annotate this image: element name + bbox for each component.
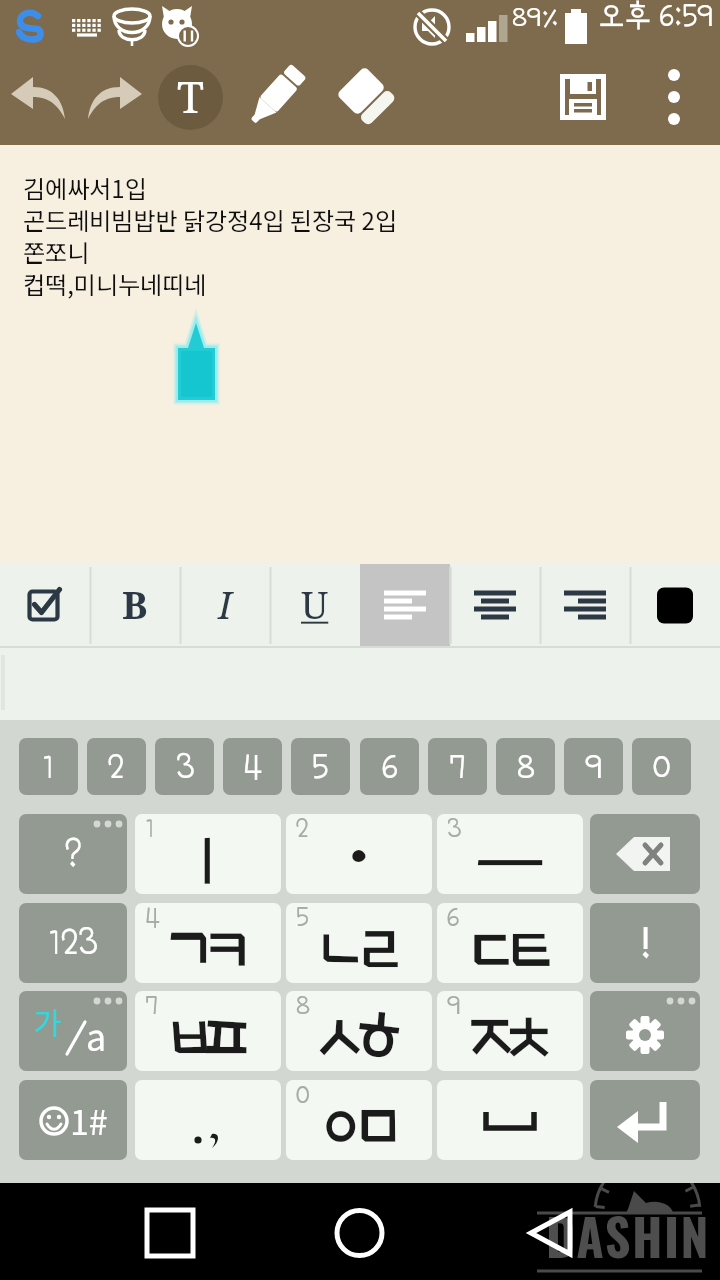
staticText: I: [218, 578, 232, 630]
staticText: ㄴ: [302, 903, 378, 983]
button[interactable]: [450, 564, 540, 647]
button[interactable]: 5: [291, 738, 350, 795]
staticText: 5: [296, 904, 309, 932]
button[interactable]: ㅈㅊ: [437, 991, 583, 1071]
staticText: ㅍ: [189, 991, 265, 1071]
button[interactable]: space: [437, 1080, 583, 1160]
button[interactable]: Undo: [8, 62, 70, 130]
button[interactable]: 1: [19, 738, 78, 795]
staticText: ㅋ: [189, 903, 265, 983]
button[interactable]: ga: [19, 991, 127, 1071]
button[interactable]: [630, 564, 720, 647]
button[interactable]: 7: [428, 738, 487, 795]
staticText: ·: [321, 814, 397, 894]
staticText: 1: [145, 815, 155, 843]
staticText: 9: [585, 749, 602, 785]
button[interactable]: 3: [155, 738, 214, 795]
staticText: ?: [64, 835, 82, 873]
button[interactable]: 123: [19, 903, 127, 983]
button[interactable]: 0: [632, 738, 691, 795]
staticText: ㅎ: [340, 991, 416, 1071]
staticText: ㅈ: [453, 991, 529, 1071]
button[interactable]: ㅂㅍ: [135, 991, 281, 1071]
button[interactable]: Save: [552, 63, 614, 131]
staticText: ㅂ: [151, 991, 227, 1071]
staticText: ㅣ: [170, 814, 246, 894]
staticText: ㅡ: [472, 814, 548, 894]
button[interactable]: ㄷㅌ: [437, 903, 583, 983]
staticText: 1#: [70, 1096, 108, 1145]
button[interactable]: ㅣ: [135, 814, 281, 894]
staticText: 0: [296, 1081, 310, 1109]
staticText: 6: [382, 749, 398, 785]
button[interactable]: Redo: [83, 62, 145, 130]
button[interactable]: [540, 564, 630, 647]
button[interactable]: ㄱㅋ: [135, 903, 281, 983]
button[interactable]: 8: [496, 738, 555, 795]
button[interactable]: [360, 564, 450, 647]
button[interactable]: ㄴㄹ: [286, 903, 432, 983]
staticText: ㅌ: [491, 903, 567, 983]
button[interactable]: More options: [650, 63, 698, 131]
staticText: !: [639, 921, 652, 965]
staticText: 4: [243, 749, 262, 785]
button[interactable]: ㅡ: [437, 814, 583, 894]
button[interactable]: ㅅㅎ: [286, 991, 432, 1071]
staticText: 89%: [512, 2, 559, 32]
button[interactable]: ?: [19, 814, 127, 894]
staticText: 123: [48, 924, 98, 962]
button[interactable]: [270, 564, 360, 647]
button[interactable]: gear: [590, 991, 700, 1071]
staticText: 7: [145, 992, 158, 1020]
staticText: ㅇ: [302, 1080, 378, 1160]
button[interactable]: 4: [223, 738, 282, 795]
staticText: 4: [145, 904, 160, 932]
button[interactable]: ㅇㅁ: [286, 1080, 432, 1160]
staticText: 가: [33, 999, 62, 1044]
staticText: 3: [176, 749, 194, 785]
button[interactable]: Text tool: [158, 65, 223, 130]
staticText: 오후 6:59: [598, 0, 713, 33]
button[interactable]: !: [590, 903, 700, 983]
staticText: DASHIN: [546, 1198, 711, 1272]
staticText: ㅁ: [340, 1080, 416, 1160]
button[interactable]: 6: [360, 738, 419, 795]
staticText: 8: [517, 749, 535, 785]
button[interactable]: ·: [286, 814, 432, 894]
staticText: 2: [296, 815, 309, 843]
staticText: 9: [447, 992, 460, 1020]
staticText: B: [122, 578, 148, 630]
button[interactable]: 2: [87, 738, 146, 795]
staticText: 8: [296, 992, 310, 1020]
staticText: ㄱ: [151, 903, 227, 983]
staticText: 6: [447, 904, 460, 932]
button[interactable]: Eraser: [336, 62, 398, 130]
staticText: 2: [108, 749, 125, 785]
button[interactable]: Recents: [130, 1193, 210, 1273]
staticText: 1: [42, 749, 55, 785]
staticText: ㅅ: [302, 991, 378, 1071]
staticText: ㅊ: [491, 991, 567, 1071]
button[interactable]: 9: [564, 738, 623, 795]
button[interactable]: Pen: [245, 62, 307, 130]
staticText: 5: [312, 749, 329, 785]
button[interactable]: Home: [320, 1193, 400, 1273]
button[interactable]: Back: [515, 1193, 595, 1273]
staticText: 7: [449, 749, 466, 785]
button[interactable]: [90, 564, 180, 647]
staticText: 김에싸서1입 곤드레비빔밥반 닭강정4입 된장국 2입 쫀쪼니 컵떡,미니누네띠…: [23, 170, 397, 301]
button[interactable]: [180, 564, 270, 647]
staticText: ㄹ: [340, 903, 416, 983]
button[interactable]: enter: [590, 1080, 700, 1160]
staticText: 3: [447, 815, 461, 843]
button[interactable]: emo: [19, 1080, 127, 1160]
staticText: T: [177, 66, 204, 126]
staticText: ㄷ: [453, 903, 529, 983]
staticText: U: [301, 578, 329, 630]
button[interactable]: dotcomma: [135, 1080, 281, 1160]
staticText: a: [86, 1009, 107, 1061]
button[interactable]: [0, 564, 90, 647]
button[interactable]: bksp: [590, 814, 700, 894]
staticText: 0: [653, 749, 671, 785]
